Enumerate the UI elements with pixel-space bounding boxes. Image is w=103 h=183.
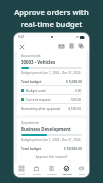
staticText: - 0.00 bbox=[73, 88, 82, 92]
button[interactable]: Home bbox=[14, 163, 29, 177]
staticText: Budget period: Jan 1, 2024 - Dec 31, 202… bbox=[21, 71, 81, 75]
staticText: real-time budget insights bbox=[6, 19, 97, 39]
staticText: Approve orders with bbox=[14, 7, 89, 17]
staticText: Approve this request? bbox=[21, 155, 82, 159]
button[interactable]: Copy bbox=[77, 42, 85, 50]
staticText: 9:41 bbox=[18, 35, 25, 39]
staticText: $ 50,000.00 bbox=[64, 146, 82, 150]
staticText: More bbox=[79, 172, 85, 175]
button[interactable]: Invoices bbox=[44, 163, 59, 177]
button[interactable]: Orders bbox=[29, 163, 44, 177]
staticText: $ 5,000.00 bbox=[66, 79, 82, 83]
staticText: Approve bbox=[62, 172, 72, 175]
staticText: Account code bbox=[21, 54, 41, 58]
staticText: Total budget bbox=[21, 146, 42, 150]
staticText: Invoices bbox=[47, 172, 57, 175]
staticText: 4,500.00 bbox=[68, 106, 82, 110]
staticText: - 500.00 bbox=[69, 97, 82, 101]
button[interactable]: Email bbox=[57, 42, 65, 50]
button[interactable]: Close bbox=[18, 43, 25, 50]
button[interactable]: Notes bbox=[67, 42, 75, 50]
button[interactable]: More bbox=[74, 163, 89, 177]
staticText: Budget used bbox=[26, 88, 46, 92]
button[interactable]: Approve bbox=[59, 163, 74, 177]
button[interactable]: Department bbox=[17, 118, 86, 163]
button[interactable]: Account code bbox=[17, 51, 86, 115]
staticText: Remaining after approval bbox=[21, 106, 61, 110]
staticText: Business Development bbox=[21, 126, 71, 132]
staticText: Department bbox=[21, 121, 39, 125]
staticText: Budget period: Jan 1, 2024 - Dec 31, 202… bbox=[21, 138, 81, 142]
staticText: Current request bbox=[26, 97, 51, 101]
staticText: Home bbox=[18, 172, 25, 175]
staticText: Total budget bbox=[21, 79, 42, 83]
staticText: Orders bbox=[33, 172, 41, 175]
staticText: 30003 - Vehicles bbox=[21, 59, 56, 65]
